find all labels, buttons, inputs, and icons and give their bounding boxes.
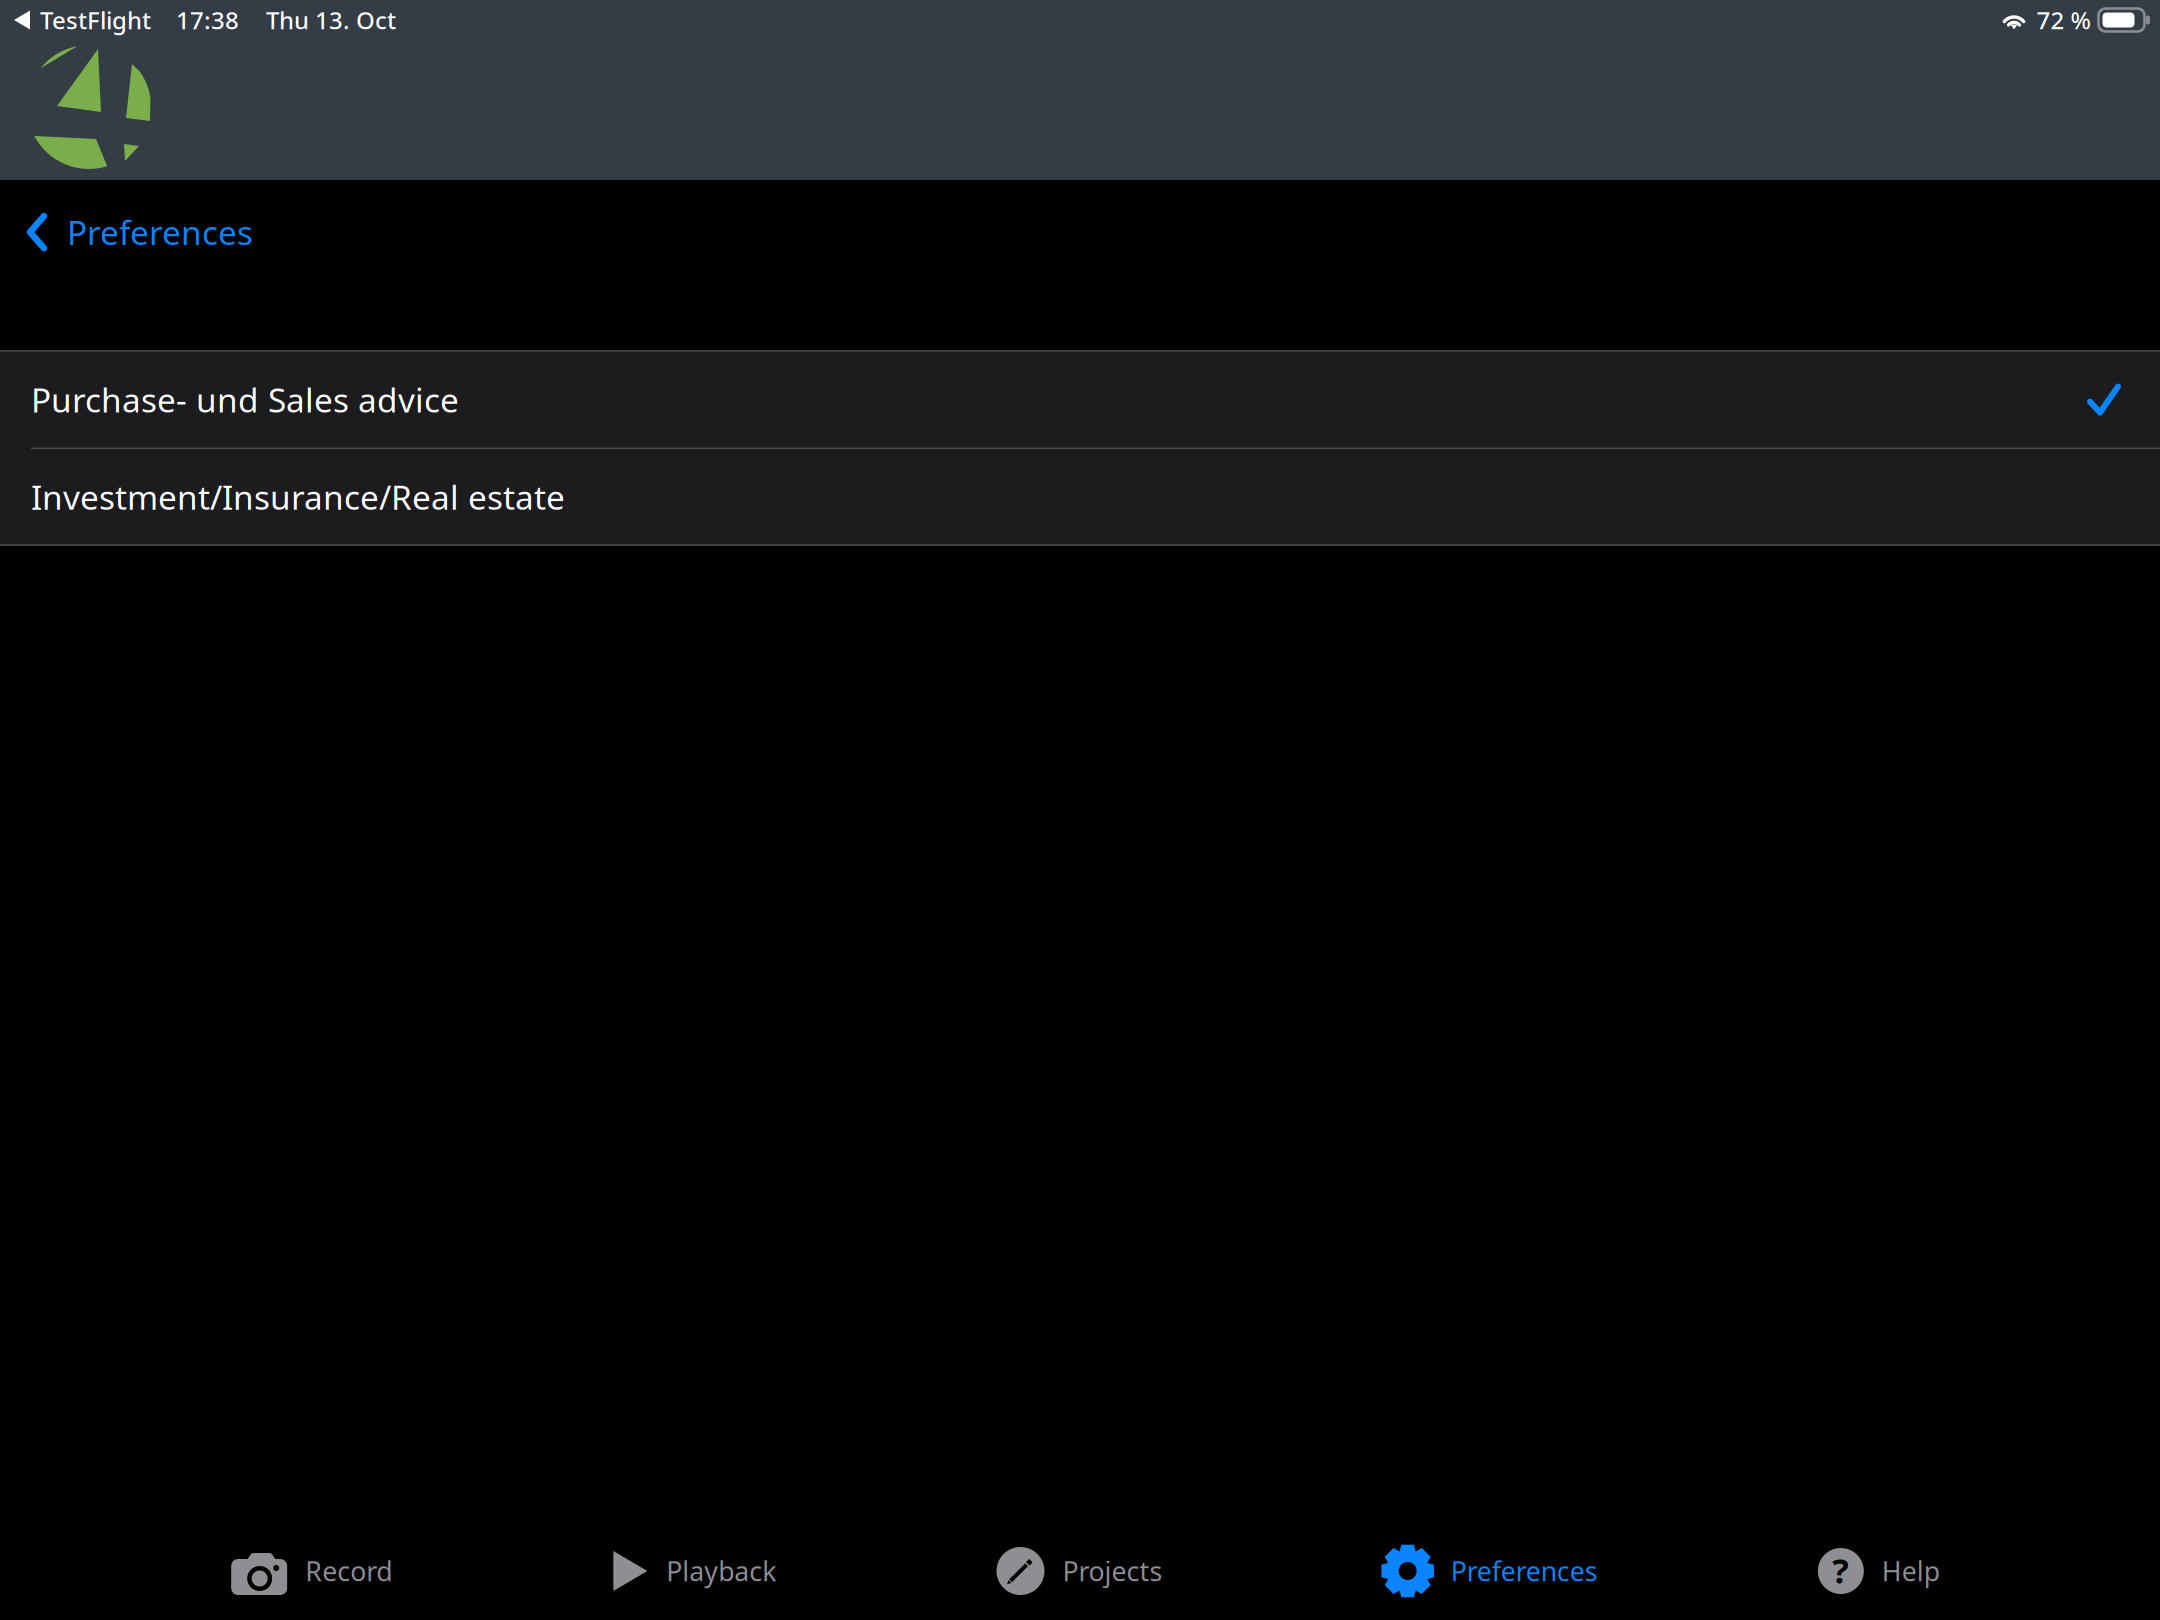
staticText: 72 % bbox=[2036, 4, 2090, 36]
button[interactable]: ? bbox=[1818, 1529, 1940, 1613]
button[interactable]: Playback bbox=[612, 1529, 776, 1613]
button[interactable]: Purchase- und Sales advice bbox=[0, 352, 2160, 448]
button[interactable]: Projects bbox=[996, 1529, 1162, 1613]
staticText: Preferences bbox=[1451, 1553, 1598, 1589]
button[interactable]: Record bbox=[231, 1529, 392, 1613]
staticText: 17:38 bbox=[176, 4, 239, 36]
button[interactable]: Preferences bbox=[0, 196, 283, 268]
staticText: Preferences bbox=[67, 210, 253, 254]
staticText: Investment/Insurance/Real estate bbox=[31, 475, 565, 519]
button[interactable]: Investment/Insurance/Real estate bbox=[0, 449, 2160, 544]
button[interactable]: Preferences bbox=[1383, 1529, 1598, 1613]
staticText: Record bbox=[305, 1553, 392, 1589]
staticText: Projects bbox=[1062, 1553, 1162, 1589]
staticText: Help bbox=[1882, 1553, 1940, 1589]
staticText: ? bbox=[1832, 1547, 1849, 1593]
staticText: TestFlight bbox=[40, 4, 151, 36]
staticText: Purchase- und Sales advice bbox=[31, 377, 459, 422]
staticText: Thu 13. Oct bbox=[266, 4, 396, 36]
staticText: Playback bbox=[666, 1553, 776, 1589]
